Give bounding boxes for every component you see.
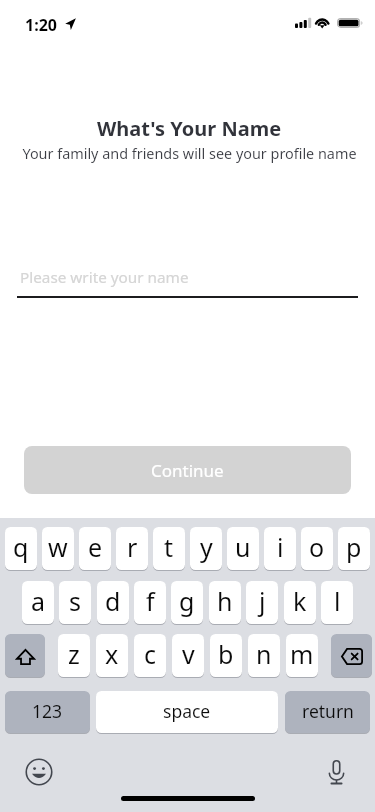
button[interactable]: n [248, 634, 280, 677]
button[interactable]: j [246, 581, 278, 624]
button[interactable]: l [321, 581, 353, 624]
button[interactable]: y [190, 527, 222, 570]
staticText: d [105, 584, 121, 618]
staticText: t [164, 530, 174, 564]
button[interactable]: b [210, 634, 242, 677]
button[interactable]: a [22, 581, 54, 624]
button[interactable]: w [42, 527, 74, 570]
staticText: p [346, 530, 362, 564]
button[interactable]: 123 [5, 691, 90, 733]
staticText: j [259, 584, 266, 618]
staticText: y [200, 530, 213, 564]
staticText: e [88, 530, 103, 564]
button[interactable]: i [264, 527, 296, 570]
staticText: o [309, 530, 325, 564]
staticText: 123 [32, 699, 63, 723]
staticText: x [105, 637, 119, 671]
staticText: s [69, 584, 81, 618]
button[interactable]: z [58, 634, 90, 677]
staticText: u [235, 530, 251, 564]
button[interactable]: Emoji keyboard [24, 757, 54, 787]
button[interactable]: d [97, 581, 129, 624]
button[interactable]: g [171, 581, 203, 624]
staticText: What's Your Name [3, 115, 375, 142]
button[interactable]: t [153, 527, 185, 570]
button[interactable]: r [116, 527, 148, 570]
staticText: l [334, 584, 341, 618]
staticText: h [217, 584, 233, 618]
button[interactable]: c [134, 634, 166, 677]
button[interactable]: m [286, 634, 318, 677]
button[interactable]: o [301, 527, 333, 570]
staticText: Continue [151, 459, 224, 482]
staticText: return [302, 699, 354, 723]
button[interactable]: Backspace [331, 634, 372, 677]
staticText: q [13, 530, 29, 564]
staticText: a [31, 584, 46, 618]
button[interactable]: h [209, 581, 241, 624]
staticText: n [256, 637, 272, 671]
button[interactable]: p [338, 527, 370, 570]
staticText: k [293, 584, 307, 618]
button[interactable]: k [284, 581, 316, 624]
button[interactable]: Continue [24, 446, 351, 494]
staticText: g [179, 584, 195, 618]
staticText: v [182, 637, 195, 671]
button[interactable]: Dictation [321, 757, 351, 787]
staticText: m [290, 637, 314, 671]
staticText: i [277, 530, 284, 564]
button[interactable]: u [227, 527, 259, 570]
button[interactable]: q [5, 527, 37, 570]
staticText: space [163, 699, 211, 723]
button[interactable]: v [172, 634, 204, 677]
staticText: b [218, 637, 234, 671]
staticText: Your family and friends will see your pr… [4, 144, 375, 164]
button[interactable]: return [285, 691, 370, 733]
button[interactable]: x [96, 634, 128, 677]
staticText: w [48, 530, 68, 564]
staticText: 1:20 [25, 14, 57, 36]
staticText: r [127, 530, 138, 564]
button[interactable]: Shift [5, 634, 45, 677]
staticText: c [144, 637, 157, 671]
button[interactable]: s [59, 581, 91, 624]
staticText: z [68, 637, 80, 671]
button[interactable]: Please write your name [17, 262, 358, 298]
button[interactable]: space [96, 691, 278, 733]
button[interactable]: f [134, 581, 166, 624]
staticText: Please write your name [20, 267, 189, 288]
staticText: f [146, 584, 155, 618]
button[interactable]: e [79, 527, 111, 570]
